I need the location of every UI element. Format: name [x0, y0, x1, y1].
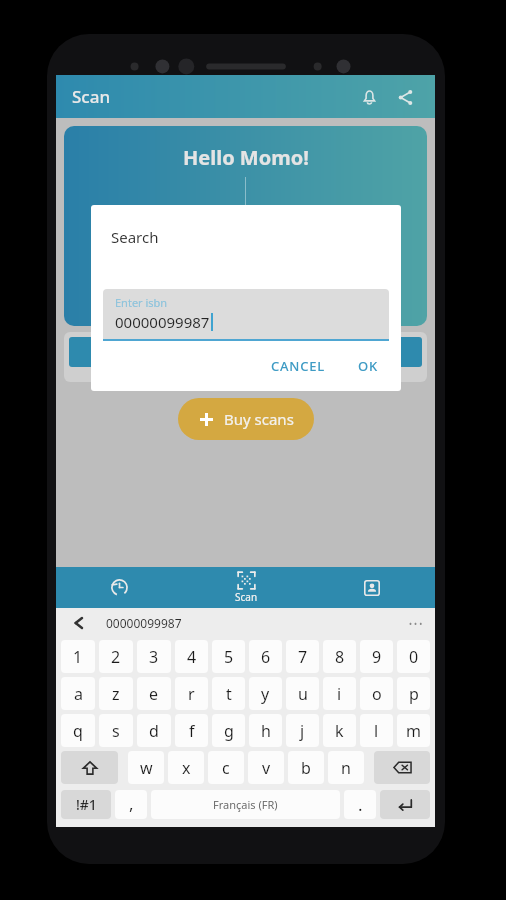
staticText: u — [298, 683, 308, 705]
staticText: n — [341, 757, 351, 779]
button[interactable]: y — [249, 677, 282, 710]
staticText: a — [74, 683, 83, 705]
staticText: o — [372, 683, 382, 705]
staticText: x — [182, 757, 191, 779]
staticText: 9 — [372, 646, 382, 668]
staticText: Search — [111, 227, 159, 247]
button[interactable]: b — [288, 751, 324, 784]
button[interactable]: m — [397, 714, 430, 747]
button[interactable]: z — [99, 677, 133, 710]
button[interactable]: 2 — [99, 640, 133, 673]
button[interactable]: 0 — [397, 640, 430, 673]
staticText: d — [149, 720, 159, 742]
button[interactable]: j — [286, 714, 319, 747]
staticText: v — [262, 757, 271, 779]
button[interactable]: Profile — [309, 567, 435, 608]
button[interactable]: k — [323, 714, 356, 747]
staticText: 00000099987 — [115, 312, 210, 332]
staticText: m — [406, 720, 421, 742]
button[interactable]: Enter — [380, 790, 430, 819]
button[interactable]: 1 — [61, 640, 95, 673]
button[interactable]: f — [175, 714, 208, 747]
staticText: f — [189, 720, 195, 742]
button[interactable]: Français (FR) — [151, 790, 340, 819]
staticText: 5 — [224, 646, 234, 668]
button[interactable]: CANCEL — [263, 351, 334, 381]
staticText: Français (FR) — [213, 797, 278, 812]
staticText: w — [140, 757, 153, 779]
button[interactable]: i — [323, 677, 356, 710]
button[interactable]: v — [248, 751, 284, 784]
button[interactable]: x — [168, 751, 204, 784]
staticText: p — [409, 683, 419, 705]
button[interactable]: r — [175, 677, 208, 710]
staticText: Scan — [235, 590, 258, 604]
button[interactable]: !#1 — [61, 790, 111, 819]
staticText: l — [374, 720, 379, 742]
button[interactable]: 6 — [249, 640, 282, 673]
staticText: 8 — [335, 646, 345, 668]
button[interactable]: 7 — [286, 640, 319, 673]
staticText: e — [149, 683, 159, 705]
button[interactable]: g — [212, 714, 245, 747]
staticText: k — [335, 720, 344, 742]
button[interactable]: a — [61, 677, 95, 710]
button[interactable]: Start search — [254, 337, 422, 367]
button[interactable]: n — [328, 751, 364, 784]
staticText: h — [261, 720, 271, 742]
button[interactable]: . — [344, 790, 376, 819]
staticText: 3 — [149, 646, 159, 668]
staticText: i — [337, 683, 342, 705]
button[interactable]: Start scanning — [69, 337, 236, 367]
button[interactable]: Enter isbn — [103, 289, 389, 341]
button[interactable]: l — [360, 714, 393, 747]
staticText: 1 — [73, 646, 83, 668]
button[interactable]: p — [397, 677, 430, 710]
button[interactable]: OK — [350, 351, 387, 381]
button[interactable]: 9 — [360, 640, 393, 673]
staticText: 6 — [261, 646, 271, 668]
staticText: g — [224, 720, 234, 742]
staticText: , — [129, 792, 134, 815]
button[interactable]: 4 — [175, 640, 208, 673]
staticText: t — [226, 683, 232, 705]
button[interactable]: 8 — [323, 640, 356, 673]
button[interactable]: q — [61, 714, 95, 747]
staticText: 00000099987 — [106, 615, 182, 631]
button[interactable]: Scan — [183, 567, 309, 608]
staticText: j — [300, 720, 305, 742]
button[interactable]: e — [137, 677, 171, 710]
staticText: y — [261, 683, 270, 705]
button[interactable] — [61, 751, 118, 784]
button[interactable]: Share — [387, 79, 423, 115]
button[interactable]: h — [249, 714, 282, 747]
staticText: . — [358, 793, 363, 816]
button[interactable]: Back — [68, 612, 90, 634]
button[interactable]: o — [360, 677, 393, 710]
staticText: CANCEL — [271, 357, 326, 375]
staticText: 7 — [298, 646, 308, 668]
button[interactable]: Notifications — [351, 79, 387, 115]
button[interactable]: Buy scans — [178, 398, 314, 440]
button[interactable]: u — [286, 677, 319, 710]
button[interactable]: , — [115, 790, 147, 819]
button[interactable] — [374, 751, 430, 784]
button[interactable]: c — [208, 751, 244, 784]
staticText: b — [301, 757, 311, 779]
staticText: z — [112, 683, 120, 705]
staticText: !#1 — [76, 795, 97, 814]
staticText: Scan — [72, 85, 111, 108]
staticText: 2 — [111, 646, 121, 668]
staticText: Hello Momo! — [183, 144, 309, 171]
button[interactable]: t — [212, 677, 245, 710]
staticText: s — [112, 720, 120, 742]
button[interactable]: History — [56, 567, 183, 608]
button[interactable]: d — [137, 714, 171, 747]
staticText: c — [222, 757, 230, 779]
button[interactable]: w — [128, 751, 164, 784]
button[interactable]: 5 — [212, 640, 245, 673]
button[interactable]: s — [99, 714, 133, 747]
staticText: 0 — [409, 646, 419, 668]
button[interactable]: 3 — [137, 640, 171, 673]
